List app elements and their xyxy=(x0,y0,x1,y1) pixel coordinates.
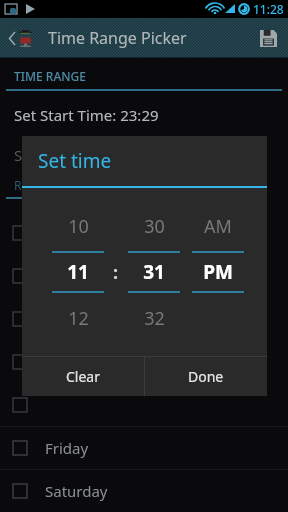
staticText: Clear xyxy=(66,367,100,386)
staticText: : xyxy=(113,260,119,285)
button[interactable] xyxy=(0,211,288,254)
staticText: Friday xyxy=(45,438,89,458)
staticText: 10 xyxy=(68,214,89,239)
button[interactable] xyxy=(0,340,288,383)
button[interactable]: Set Start Time: 23:29 xyxy=(14,105,159,125)
staticText: 11 xyxy=(67,259,89,285)
button[interactable]: Navigate up xyxy=(4,21,38,55)
button[interactable]: AM xyxy=(186,209,250,335)
button[interactable]: 10 xyxy=(46,209,110,335)
button[interactable]: 30 xyxy=(122,209,186,335)
staticText: Time Range Picker xyxy=(48,27,187,49)
button[interactable]: Saturday xyxy=(0,470,288,512)
button[interactable]: Done xyxy=(145,357,267,396)
staticText: Set time xyxy=(38,148,112,174)
button[interactable]: Friday xyxy=(0,427,288,469)
button[interactable] xyxy=(0,383,288,426)
staticText: S xyxy=(14,145,23,165)
staticText: Done xyxy=(188,367,224,386)
staticText: TIME RANGE xyxy=(14,68,86,84)
button[interactable] xyxy=(0,254,288,297)
staticText: 30 xyxy=(144,214,165,239)
staticText: 31 xyxy=(143,259,165,285)
staticText: AM xyxy=(204,214,232,239)
staticText: R xyxy=(14,177,22,193)
button[interactable] xyxy=(0,297,288,340)
staticText: 11:28 xyxy=(253,1,284,17)
button[interactable]: Save xyxy=(248,18,288,58)
staticText: 12 xyxy=(68,306,89,331)
staticText: 32 xyxy=(144,306,165,331)
button[interactable]: Clear xyxy=(22,357,144,396)
staticText: PM xyxy=(203,259,233,285)
staticText: Saturday xyxy=(45,481,108,501)
